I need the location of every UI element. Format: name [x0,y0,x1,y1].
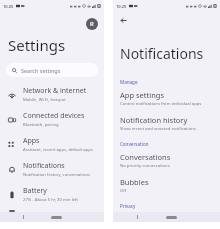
button[interactable]: Storage [0,207,104,212]
button[interactable]: App settings [113,86,220,111]
staticText: Bluetooth, pairing [23,122,59,128]
staticText: Connected devices [23,111,85,121]
staticText: Control notifications from individual ap… [120,101,202,107]
staticText: Notification history, conversations [23,172,91,178]
staticText: Conversations [120,152,171,162]
button[interactable]: Battery [0,182,104,207]
staticText: Off [120,188,127,194]
staticText: App settings [120,90,164,100]
staticText: R [90,20,94,28]
button[interactable]: Account [86,18,98,30]
staticText: Bubbles [120,177,149,187]
staticText: Manage [120,79,138,85]
button[interactable]: Apps [0,132,104,157]
staticText: 10:25 [116,4,127,9]
staticText: Search settings [21,67,61,74]
staticText: 10:25 [3,4,14,9]
staticText: No priority conversations [120,163,170,169]
staticText: Conversation [120,141,149,147]
staticText: Show recent and snoozed notifications [120,126,196,132]
button[interactable]: Connected devices [0,107,104,132]
button[interactable]: Notifications [0,157,104,182]
staticText: Notification history [120,115,188,125]
button[interactable]: Search settings [6,63,98,77]
button[interactable]: Network & internet [0,82,104,107]
staticText: Battery [23,186,47,196]
staticText: Apps [23,136,40,146]
staticText: Notifications [120,44,204,63]
button[interactable]: Conversations [113,148,220,173]
staticText: Settings [8,35,66,55]
button[interactable]: Notification history [113,111,220,136]
staticText: Privacy [120,203,136,209]
staticText: Notifications [23,161,65,171]
staticText: Network & internet [23,86,87,96]
staticText: Mobile, Wi-Fi, hotspot [23,97,66,103]
button[interactable]: Back [117,14,130,27]
button[interactable]: Bubbles [113,173,220,198]
staticText: 27% - About 5 hr, 30 min left [23,197,79,203]
staticText: Assistant, recent apps, default apps [23,147,93,153]
